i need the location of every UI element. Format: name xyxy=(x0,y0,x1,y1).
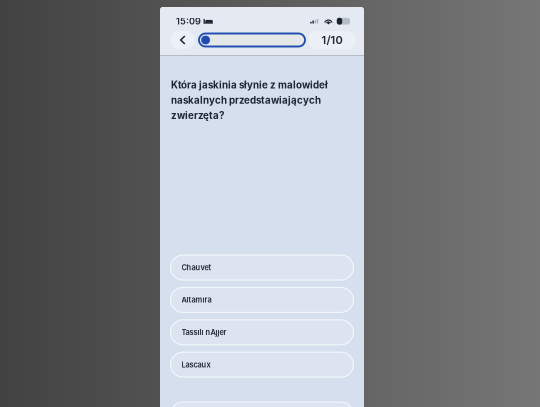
button[interactable]: Altamira xyxy=(170,287,353,312)
staticText: Która jaskinia słynie z malowideł naskal… xyxy=(171,79,328,121)
button[interactable]: Sprawdź xyxy=(170,402,353,407)
button[interactable]: Back xyxy=(170,31,195,49)
staticText: Chauvet xyxy=(181,263,211,272)
staticText: Altamira xyxy=(181,295,211,304)
button[interactable]: 1/10 xyxy=(308,31,355,49)
staticText: 1/10 xyxy=(321,33,342,47)
staticText: 15:09 xyxy=(176,16,201,27)
button[interactable]: Lascaux xyxy=(170,352,353,377)
staticText: Lascaux xyxy=(181,360,210,369)
staticText: Tassili nAjjer xyxy=(181,328,226,337)
button[interactable]: Chauvet xyxy=(170,255,353,280)
button[interactable]: Tassili nAjjer xyxy=(170,320,353,345)
